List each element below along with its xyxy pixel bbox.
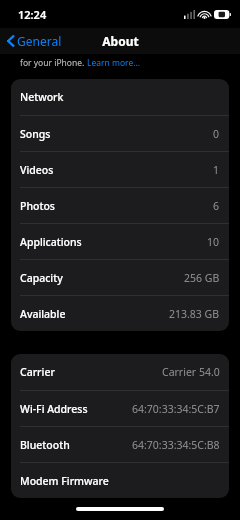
- staticText: Capacity: [20, 271, 63, 285]
- staticText: Photos: [20, 199, 55, 213]
- staticText: Songs: [20, 127, 51, 141]
- staticText: Network: [20, 90, 64, 104]
- staticText: Videos: [20, 163, 54, 177]
- button[interactable]: Bluetooth: [11, 426, 229, 462]
- button[interactable]: Network: [11, 79, 229, 115]
- staticText: Wi-Fi Address: [20, 402, 88, 416]
- staticText: 0: [213, 127, 220, 141]
- staticText: 213.83 GB: [169, 307, 220, 321]
- button[interactable]: Songs: [11, 115, 229, 151]
- button[interactable]: Photos: [11, 187, 229, 223]
- staticText: 10: [207, 235, 220, 249]
- button[interactable]: Modem Firmware: [11, 462, 229, 498]
- staticText: Available: [20, 307, 66, 321]
- staticText: 256 GB: [184, 271, 220, 285]
- staticText: 64:70:33:34:5C:B7: [132, 402, 220, 416]
- staticText: 12:24: [18, 7, 47, 22]
- button[interactable]: Available: [11, 295, 229, 331]
- staticText: Carrier 54.0: [162, 365, 220, 379]
- button[interactable]: Carrier: [11, 354, 229, 390]
- button[interactable]: Learn more...: [87, 57, 141, 69]
- button[interactable]: General: [0, 29, 70, 53]
- staticText: About: [102, 33, 139, 49]
- staticText: General: [17, 33, 62, 49]
- button[interactable]: Wi-Fi Address: [11, 390, 229, 426]
- button[interactable]: Applications: [11, 223, 229, 259]
- staticText: for your iPhone.: [20, 57, 87, 69]
- staticText: 1: [213, 163, 220, 177]
- staticText: Carrier: [20, 365, 55, 379]
- staticText: 6: [213, 199, 220, 213]
- staticText: 64:70:33:34:5C:B8: [132, 438, 220, 452]
- staticText: Bluetooth: [20, 438, 70, 452]
- button[interactable]: Capacity: [11, 259, 229, 295]
- staticText: Applications: [20, 235, 82, 249]
- staticText: Modem Firmware: [20, 474, 109, 488]
- button[interactable]: Videos: [11, 151, 229, 187]
